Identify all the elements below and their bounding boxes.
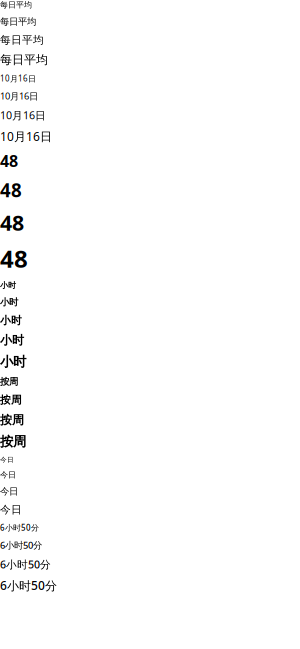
staticText: 10月16日 (0, 73, 36, 84)
staticText: 48 (0, 208, 24, 237)
staticText: 今日 (0, 470, 16, 480)
staticText: 小时 (0, 280, 16, 290)
staticText: 今日 (0, 486, 18, 497)
staticText: 小时 (0, 296, 18, 308)
staticText: 48 (0, 150, 18, 171)
staticText: 每日平均 (0, 33, 44, 46)
staticText: 今日 (0, 456, 14, 464)
staticText: 每日平均 (0, 52, 48, 67)
staticText: 每日平均 (0, 16, 36, 27)
staticText: 今日 (0, 503, 22, 516)
staticText: 48 (0, 177, 22, 202)
staticText: 按周 (0, 376, 18, 387)
staticText: 6小时50分 (0, 539, 42, 551)
staticText: 6小时50分 (0, 522, 39, 533)
staticText: 每日平均 (0, 0, 32, 10)
staticText: 按周 (0, 413, 24, 427)
staticText: 小时 (0, 333, 24, 348)
staticText: 按周 (0, 393, 22, 407)
staticText: 48 (0, 243, 28, 274)
staticText: 6小时50分 (0, 577, 57, 593)
staticText: 10月16日 (0, 108, 46, 122)
staticText: 6小时50分 (0, 557, 51, 571)
staticText: 小时 (0, 314, 22, 327)
staticText: 小时 (0, 354, 26, 370)
staticText: 10月16日 (0, 128, 52, 144)
staticText: 按周 (0, 433, 26, 450)
staticText: 10月16日 (0, 90, 38, 102)
